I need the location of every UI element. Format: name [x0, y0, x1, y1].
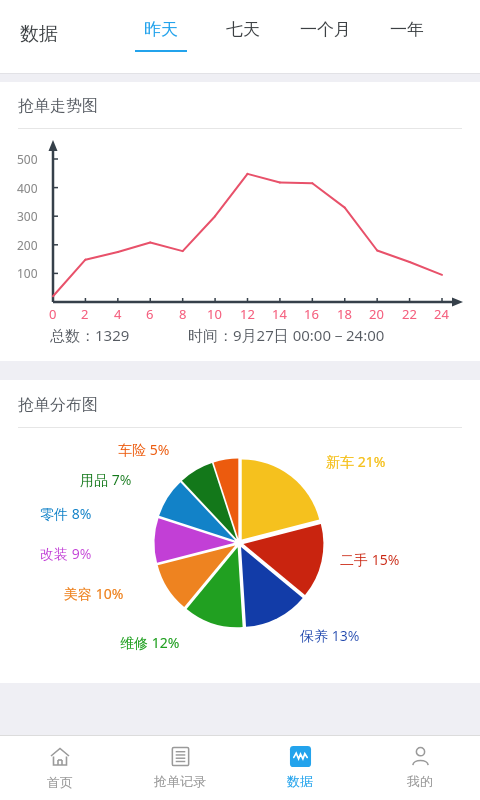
staticText: 数据: [287, 773, 313, 789]
button[interactable]: 抢单记录: [120, 736, 240, 800]
staticText: 七天: [226, 19, 260, 40]
staticText: 新车 21%: [326, 452, 386, 471]
staticText: 22: [402, 305, 417, 323]
staticText: 改装 9%: [40, 544, 92, 563]
staticText: 保养 13%: [300, 626, 360, 645]
staticText: 昨天: [144, 19, 178, 40]
staticText: 抢单记录: [154, 773, 206, 789]
staticText: 首页: [47, 774, 73, 790]
button[interactable]: 我的: [360, 736, 480, 800]
staticText: 200: [17, 237, 38, 253]
other: 抢单记录: [169, 745, 192, 768]
staticText: 16: [304, 305, 319, 323]
other: 我的: [409, 745, 432, 768]
staticText: 车险 5%: [118, 440, 170, 459]
staticText: 20: [369, 305, 384, 323]
staticText: 总数：1329: [50, 325, 130, 345]
staticText: 10: [207, 305, 222, 323]
button[interactable]: 数据: [240, 736, 360, 800]
staticText: 0: [49, 305, 57, 323]
staticText: 零件 8%: [40, 504, 92, 523]
staticText: 我的: [407, 773, 433, 789]
other: 数据: [289, 745, 312, 768]
staticText: 时间：9月27日 00:00－24:00: [188, 325, 385, 345]
staticText: 4: [114, 305, 122, 323]
staticText: 数据: [20, 22, 58, 46]
button[interactable]: 首页: [0, 736, 120, 800]
staticText: 300: [17, 208, 38, 224]
staticText: 8: [179, 305, 187, 323]
staticText: 一个月: [300, 19, 351, 40]
button[interactable]: 七天: [202, 15, 284, 52]
staticText: 100: [17, 265, 38, 281]
staticText: 用品 7%: [80, 470, 132, 489]
staticText: 18: [337, 305, 352, 323]
staticText: 6: [146, 305, 154, 323]
staticText: 二手 15%: [340, 550, 400, 569]
staticText: 400: [17, 180, 38, 196]
staticText: 24: [434, 305, 449, 323]
staticText: 美容 10%: [64, 584, 124, 603]
staticText: 2: [81, 305, 89, 323]
button[interactable]: 一个月: [284, 15, 366, 52]
staticText: 抢单分布图: [18, 395, 98, 415]
staticText: 14: [272, 305, 287, 323]
staticText: 一年: [390, 19, 424, 40]
button[interactable]: 一年: [366, 15, 448, 52]
staticText: 500: [17, 151, 38, 167]
staticText: 维修 12%: [120, 633, 180, 652]
button[interactable]: 昨天: [120, 15, 202, 52]
staticText: 12: [240, 305, 255, 323]
other: 首页: [48, 745, 72, 769]
staticText: 抢单走势图: [18, 96, 98, 116]
